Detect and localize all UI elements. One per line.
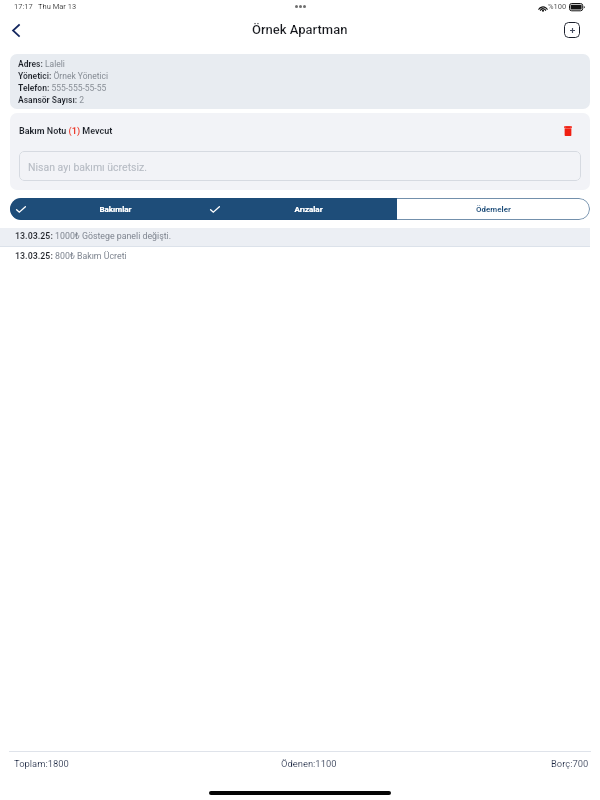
button[interactable]: Ödemeler — [397, 198, 590, 220]
staticText: Borç:700 — [551, 758, 589, 769]
staticText: Telefon: 555-555-55-55 — [18, 83, 107, 93]
button[interactable]: Adres: Laleli — [10, 54, 590, 109]
button[interactable]: 13.03.25: 800₺ Bakım Ücreti — [0, 247, 590, 266]
button[interactable]: Nisan ayı bakımı ücretsiz. — [19, 151, 581, 181]
staticText: %100 — [548, 2, 567, 11]
staticText: Örnek Apartman — [252, 22, 348, 37]
staticText: 13.03.25: 1000₺ Göstege paneli değişti. — [15, 231, 172, 241]
staticText: Adres: Laleli — [18, 59, 65, 69]
button[interactable]: Arızalar — [204, 198, 397, 220]
staticText: Arızalar — [294, 205, 323, 214]
button[interactable]: Bakımlar — [10, 198, 204, 220]
staticText: Bakım Notu (1) Mevcut — [19, 126, 113, 137]
staticText: Toplam:1800 — [14, 758, 69, 769]
staticText: 17:17 Thu Mar 13 — [14, 2, 77, 11]
button[interactable]: Add — [564, 22, 580, 38]
button[interactable]: 13.03.25: 1000₺ Göstege paneli değişti. — [0, 228, 590, 247]
staticText: Ödemeler — [476, 205, 511, 214]
button[interactable]: Delete note — [561, 124, 575, 138]
staticText: 13.03.25: 800₺ Bakım Ücreti — [15, 251, 127, 261]
button[interactable]: Back — [4, 18, 28, 42]
staticText: Yönetici: Örnek Yönetici — [18, 71, 109, 81]
staticText: Bakımlar — [99, 205, 132, 214]
staticText: Ödenen:1100 — [281, 758, 337, 769]
staticText: Nisan ayı bakımı ücretsiz. — [28, 161, 148, 173]
staticText: Asansör Sayısı: 2 — [18, 95, 85, 105]
